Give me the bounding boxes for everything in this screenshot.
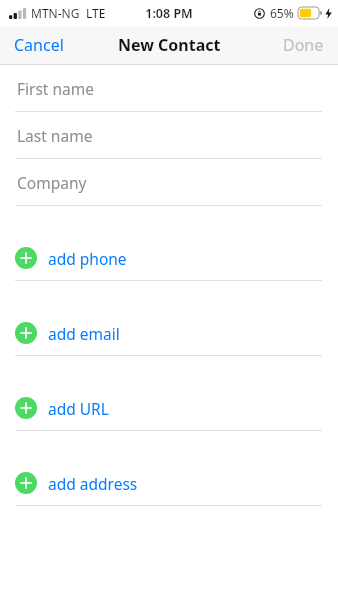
staticText: New Contact [118, 34, 221, 56]
button[interactable]: add URL [0, 356, 338, 430]
button[interactable]: Last name [0, 112, 338, 158]
staticText: Company [17, 172, 87, 193]
button[interactable]: add address [0, 431, 338, 505]
staticText: Done [283, 34, 324, 56]
staticText: 65% [270, 5, 294, 21]
button[interactable]: add phone [0, 206, 338, 280]
staticText: LTE [86, 5, 106, 21]
staticText: add address [48, 473, 138, 494]
staticText: add email [48, 323, 120, 344]
button[interactable]: Cancel [0, 28, 78, 62]
button[interactable]: First name [0, 65, 338, 111]
button[interactable]: add email [0, 281, 338, 355]
button[interactable]: Company [0, 159, 338, 205]
staticText: 1:08 PM [145, 5, 193, 22]
staticText: add URL [48, 398, 109, 419]
staticText: Cancel [14, 34, 64, 56]
staticText: MTN-NG [31, 5, 80, 21]
staticText: First name [17, 78, 95, 99]
staticText: Last name [17, 125, 93, 146]
staticText: add phone [48, 248, 127, 269]
button[interactable]: Done [269, 28, 338, 62]
